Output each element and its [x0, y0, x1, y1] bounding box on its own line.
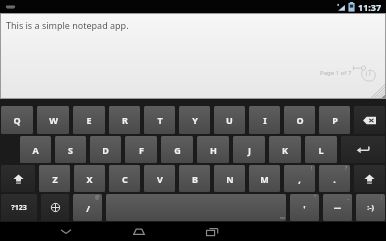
staticText: N [226, 173, 234, 185]
staticText: J [248, 144, 251, 156]
staticText: I [263, 114, 267, 126]
staticText: , [298, 173, 301, 185]
button[interactable]: I [249, 106, 280, 134]
button[interactable]: This is a simple notepad app. [1, 14, 385, 98]
button[interactable]: Shift [354, 165, 385, 192]
staticText: Page 1 of 7 [320, 69, 352, 77]
button[interactable]: D [90, 136, 121, 163]
button[interactable]: H [197, 136, 229, 163]
staticText: C [122, 173, 128, 185]
button[interactable]: P [319, 106, 350, 134]
button[interactable]: C [109, 165, 140, 192]
staticText: This is a simple notepad app. [6, 19, 129, 31]
staticText: ! [311, 165, 313, 172]
staticText: V [157, 173, 163, 185]
staticText: @ [95, 194, 100, 201]
staticText: H [210, 144, 217, 156]
button[interactable]: W [37, 106, 69, 134]
staticText: M [260, 173, 269, 185]
button[interactable]: F [125, 136, 157, 163]
staticText: Z [52, 173, 58, 185]
button[interactable]: ?123 [1, 194, 37, 221]
button[interactable]: X [74, 165, 105, 192]
staticText: W [49, 114, 58, 126]
button[interactable]: O [284, 106, 315, 134]
button[interactable]: Q [1, 106, 33, 134]
button[interactable]: B [179, 165, 210, 192]
button[interactable]: Hide keyboard [49, 222, 83, 241]
button[interactable]: " [290, 194, 319, 221]
button[interactable]: M [249, 165, 280, 192]
button[interactable]: Dash [323, 194, 352, 221]
staticText: 11:37 [358, 1, 382, 13]
staticText: . [333, 173, 336, 185]
button[interactable]: Shift [1, 165, 35, 192]
staticText: ' [303, 202, 306, 214]
button[interactable]: Home [122, 222, 156, 241]
button[interactable]: V [144, 165, 175, 192]
button[interactable]: Recent apps [195, 222, 229, 241]
staticText: U [226, 114, 233, 126]
staticText: ; [381, 194, 383, 201]
button[interactable]: ? [319, 165, 350, 192]
button[interactable]: Backspace [354, 106, 385, 134]
button[interactable]: Space [106, 194, 286, 221]
staticText: ?123 [11, 203, 27, 213]
staticText: " [314, 194, 317, 201]
button[interactable]: N [214, 165, 245, 192]
button[interactable]: Enter [341, 136, 385, 163]
staticText: D [102, 144, 109, 156]
staticText: T [157, 114, 163, 126]
staticText: R [122, 114, 128, 126]
button[interactable]: ; [356, 194, 385, 221]
staticText: F [139, 144, 144, 156]
button[interactable]: ! [284, 165, 315, 192]
button[interactable]: @ [73, 194, 102, 221]
staticText: :-) [367, 203, 374, 213]
staticText: Y [192, 114, 198, 126]
staticText: E [86, 114, 92, 126]
staticText: B [192, 173, 198, 185]
button[interactable]: G [161, 136, 193, 163]
staticText: O [296, 114, 304, 126]
button[interactable]: A [20, 136, 51, 163]
button[interactable]: R [109, 106, 140, 134]
button[interactable]: J [233, 136, 265, 163]
staticText: L [318, 144, 324, 156]
button[interactable]: K [269, 136, 301, 163]
button[interactable]: U [214, 106, 245, 134]
button[interactable]: L [305, 136, 337, 163]
staticText: / [86, 202, 90, 214]
button[interactable]: Change language [41, 194, 69, 221]
staticText: A [32, 144, 39, 156]
button[interactable]: S [55, 136, 86, 163]
staticText: K [282, 144, 288, 156]
button[interactable]: E [73, 106, 105, 134]
staticText: G [174, 144, 181, 156]
button[interactable]: T [144, 106, 175, 134]
staticText: S [68, 144, 73, 156]
staticText: P [332, 114, 338, 126]
staticText: Q [13, 114, 21, 126]
staticText: ? [345, 165, 348, 172]
staticText: _ [347, 194, 350, 201]
button[interactable]: Y [179, 106, 210, 134]
staticText: X [86, 173, 93, 185]
button[interactable]: Z [39, 165, 70, 192]
